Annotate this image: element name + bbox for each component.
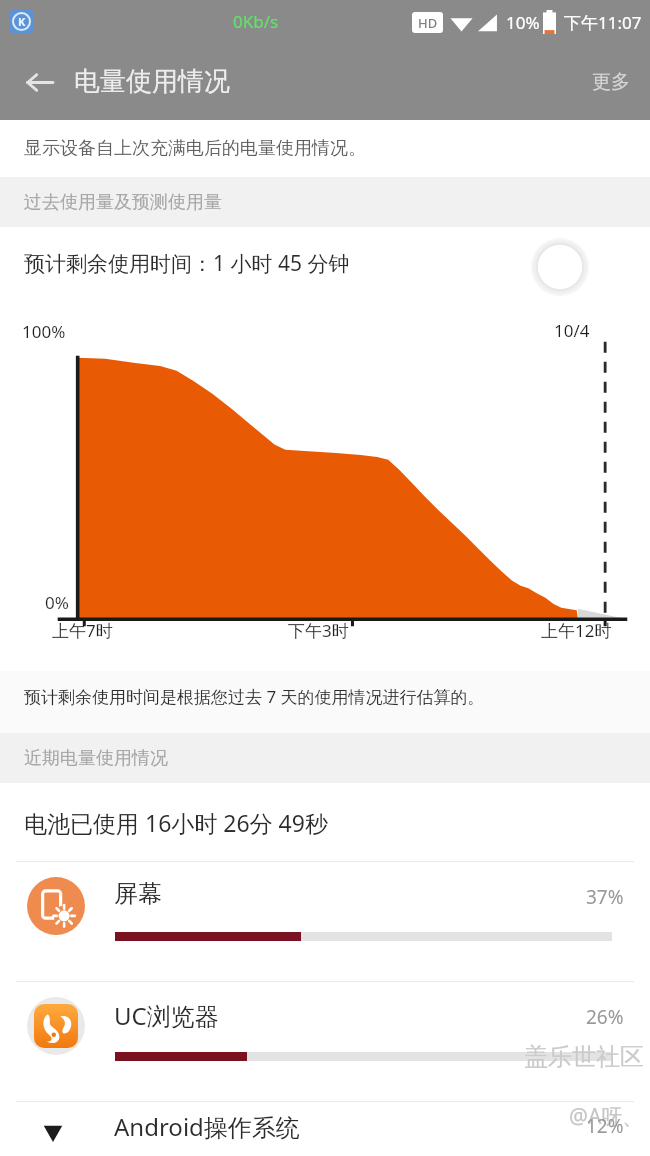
button[interactable]: 电池已使用 16小时 26分 49秒: [0, 783, 650, 861]
staticText: 电量使用情况: [74, 65, 230, 98]
staticText: Android操作系统: [114, 1110, 300, 1141]
staticText: 下午11:07: [564, 11, 642, 34]
staticText: 近期电量使用情况: [24, 747, 168, 770]
staticText: 电池已使用 16小时 26分 49秒: [24, 807, 328, 838]
button[interactable]: UC浏览器: [0, 982, 650, 1101]
staticText: K: [18, 14, 26, 29]
button[interactable]: 更多: [572, 54, 650, 110]
staticText: 预计剩余使用时间：1 小时 45 分钟: [24, 249, 350, 278]
staticText: 盖乐世社区: [524, 1042, 644, 1072]
staticText: 37%: [586, 884, 624, 910]
staticText: UC浏览器: [114, 999, 219, 1032]
staticText: HD: [418, 14, 438, 32]
staticText: 过去使用量及预测使用量: [24, 191, 222, 214]
staticText: 上午7时: [52, 619, 113, 642]
staticText: 预计剩余使用时间是根据您过去 7 天的使用情况进行估算的。: [24, 685, 485, 708]
button[interactable]: @A呀、: [0, 1102, 650, 1133]
staticText: 100%: [22, 320, 66, 343]
staticText: 更多: [592, 70, 630, 94]
staticText: 下午3时: [288, 619, 349, 642]
staticText: 0Kb/s: [233, 10, 279, 33]
staticText: 显示设备自上次充满电后的电量使用情况。: [24, 137, 366, 160]
button[interactable]: 屏幕: [0, 862, 650, 981]
staticText: @A呀、: [569, 1102, 644, 1131]
staticText: 10/4: [554, 319, 590, 342]
staticText: 26%: [586, 1004, 624, 1030]
staticText: 0%: [45, 591, 69, 614]
staticText: 12%: [586, 1113, 624, 1139]
button[interactable]: Back: [14, 57, 64, 107]
staticText: 屏幕: [114, 879, 162, 909]
button[interactable]: Refresh: [532, 239, 588, 295]
staticText: 上午12时: [541, 619, 612, 642]
staticText: 10%: [506, 11, 540, 34]
